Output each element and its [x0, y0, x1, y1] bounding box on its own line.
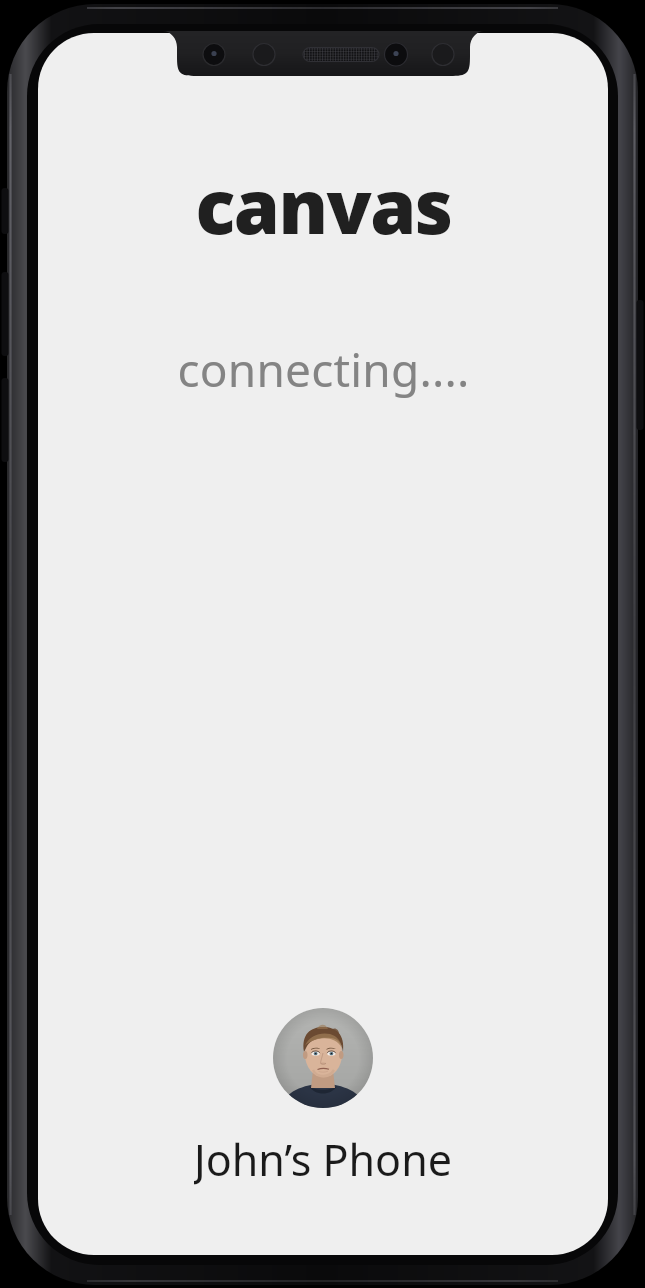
- other: John's Phone avatar: [273, 1008, 373, 1108]
- staticText: John’s Phone: [194, 1130, 452, 1188]
- button[interactable]: canvas: [38, 155, 608, 247]
- staticText: canvas: [195, 155, 452, 247]
- button[interactable]: John's Phone avatar: [38, 1008, 608, 1188]
- staticText: connecting....: [177, 338, 470, 401]
